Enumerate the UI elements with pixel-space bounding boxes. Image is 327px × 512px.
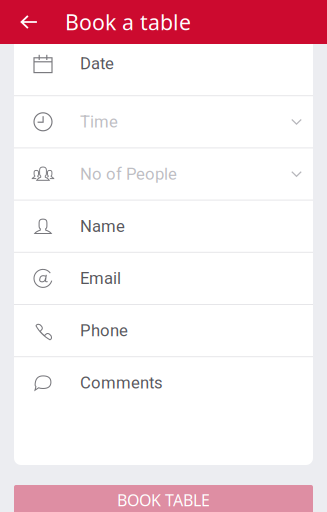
button[interactable]: Comments [14,357,313,408]
button[interactable]: No of People [14,148,313,200]
staticText: Date [80,54,114,73]
button[interactable]: Phone [14,305,313,356]
staticText: Name [80,216,125,236]
button[interactable]: Date [14,32,313,95]
staticText: BOOK TABLE [117,489,210,511]
staticText: Time [80,112,118,131]
button[interactable]: Name [14,201,313,252]
button[interactable]: Email [14,253,313,304]
staticText: Comments [80,373,163,392]
button[interactable]: Back [0,0,48,44]
button[interactable]: BOOK TABLE [0,465,327,512]
staticText: Book a table [65,8,191,36]
staticText: No of People [80,164,177,184]
staticText: Phone [80,321,128,340]
staticText: Email [80,269,121,288]
button[interactable]: Time [14,96,313,147]
